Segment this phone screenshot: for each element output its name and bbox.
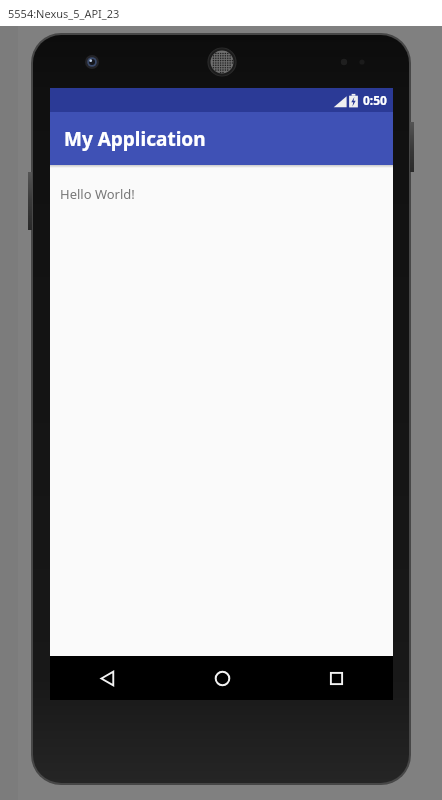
staticText: Hello World! — [60, 185, 135, 203]
staticText: 0:50 — [363, 92, 387, 108]
button[interactable]: Recent apps — [279, 656, 393, 700]
staticText: 5554:Nexus_5_API_23 — [8, 6, 120, 21]
button[interactable]: My Application — [50, 112, 393, 165]
staticText: My Application — [64, 126, 206, 152]
button[interactable]: Home — [165, 656, 279, 700]
button[interactable]: Back — [50, 656, 165, 700]
